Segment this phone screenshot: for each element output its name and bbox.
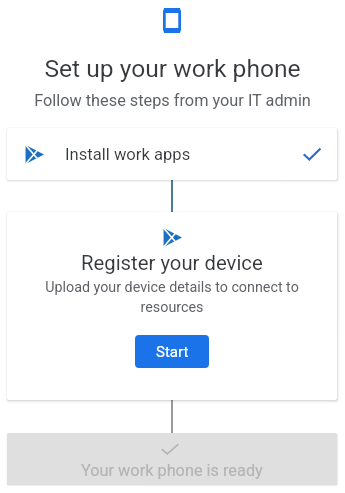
staticText: Set up your work phone [0, 54, 345, 83]
button[interactable]: Install work apps [7, 128, 337, 180]
staticText: Install work apps [65, 145, 191, 164]
other: Work phone [163, 8, 181, 33]
button[interactable]: Your work phone is ready [7, 433, 337, 485]
staticText: Your work phone is ready [81, 461, 263, 480]
staticText: Upload your device details to connect to… [33, 279, 311, 315]
other: Step completed [303, 147, 321, 161]
staticText: Register your device [81, 251, 263, 275]
staticText: Follow these steps from your IT admin [0, 91, 345, 110]
button[interactable]: Start [135, 335, 209, 368]
staticText: Start [156, 343, 189, 361]
